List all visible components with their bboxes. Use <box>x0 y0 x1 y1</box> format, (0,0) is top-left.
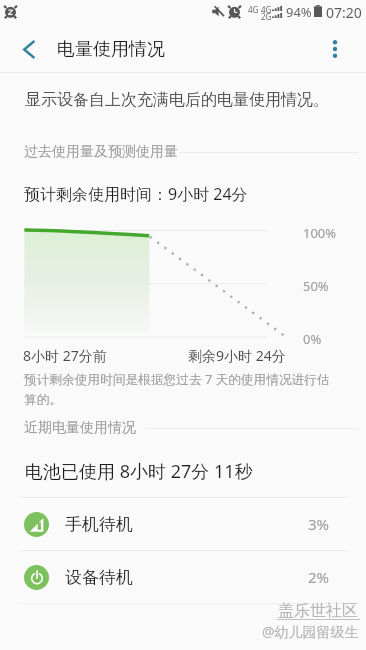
staticText: 剩余9小时 24分 <box>188 346 286 365</box>
staticText: 电量使用情况 <box>57 38 165 61</box>
staticText: 50% <box>303 277 329 295</box>
staticText: 电池已使用 8小时 27分 11秒 <box>25 459 253 484</box>
staticText: 预计剩余使用时间是根据您过去 7 天的使用情况进行估算的。 <box>24 370 334 408</box>
staticText: 100% <box>303 224 337 242</box>
staticText: @幼儿园留级生 <box>262 622 359 641</box>
staticText: 2% <box>308 567 330 587</box>
staticText: 2G <box>261 11 272 22</box>
staticText: 显示设备自上次充满电后的电量使用情况。 <box>25 90 329 110</box>
staticText: 8小时 27分前 <box>23 346 107 365</box>
staticText: 盖乐世社区 <box>278 601 358 621</box>
staticText: 3% <box>308 514 330 534</box>
staticText: 设备待机 <box>65 567 133 588</box>
staticText: 94% <box>286 3 312 21</box>
staticText: 4G <box>248 4 259 15</box>
staticText: 07:20 <box>326 3 362 22</box>
staticText: 4G <box>261 4 272 15</box>
staticText: 0% <box>303 330 322 348</box>
staticText: 近期电量使用情况 <box>24 419 136 437</box>
staticText: 过去使用量及预测使用量 <box>24 143 178 161</box>
button[interactable]: 手机待机 <box>0 498 366 550</box>
button[interactable]: 设备待机 <box>0 551 366 603</box>
button[interactable]: Back <box>9 26 47 72</box>
staticText: 手机待机 <box>65 514 133 535</box>
staticText: 预计剩余使用时间：9小时 24分 <box>24 183 248 205</box>
button[interactable]: More options <box>314 26 356 72</box>
